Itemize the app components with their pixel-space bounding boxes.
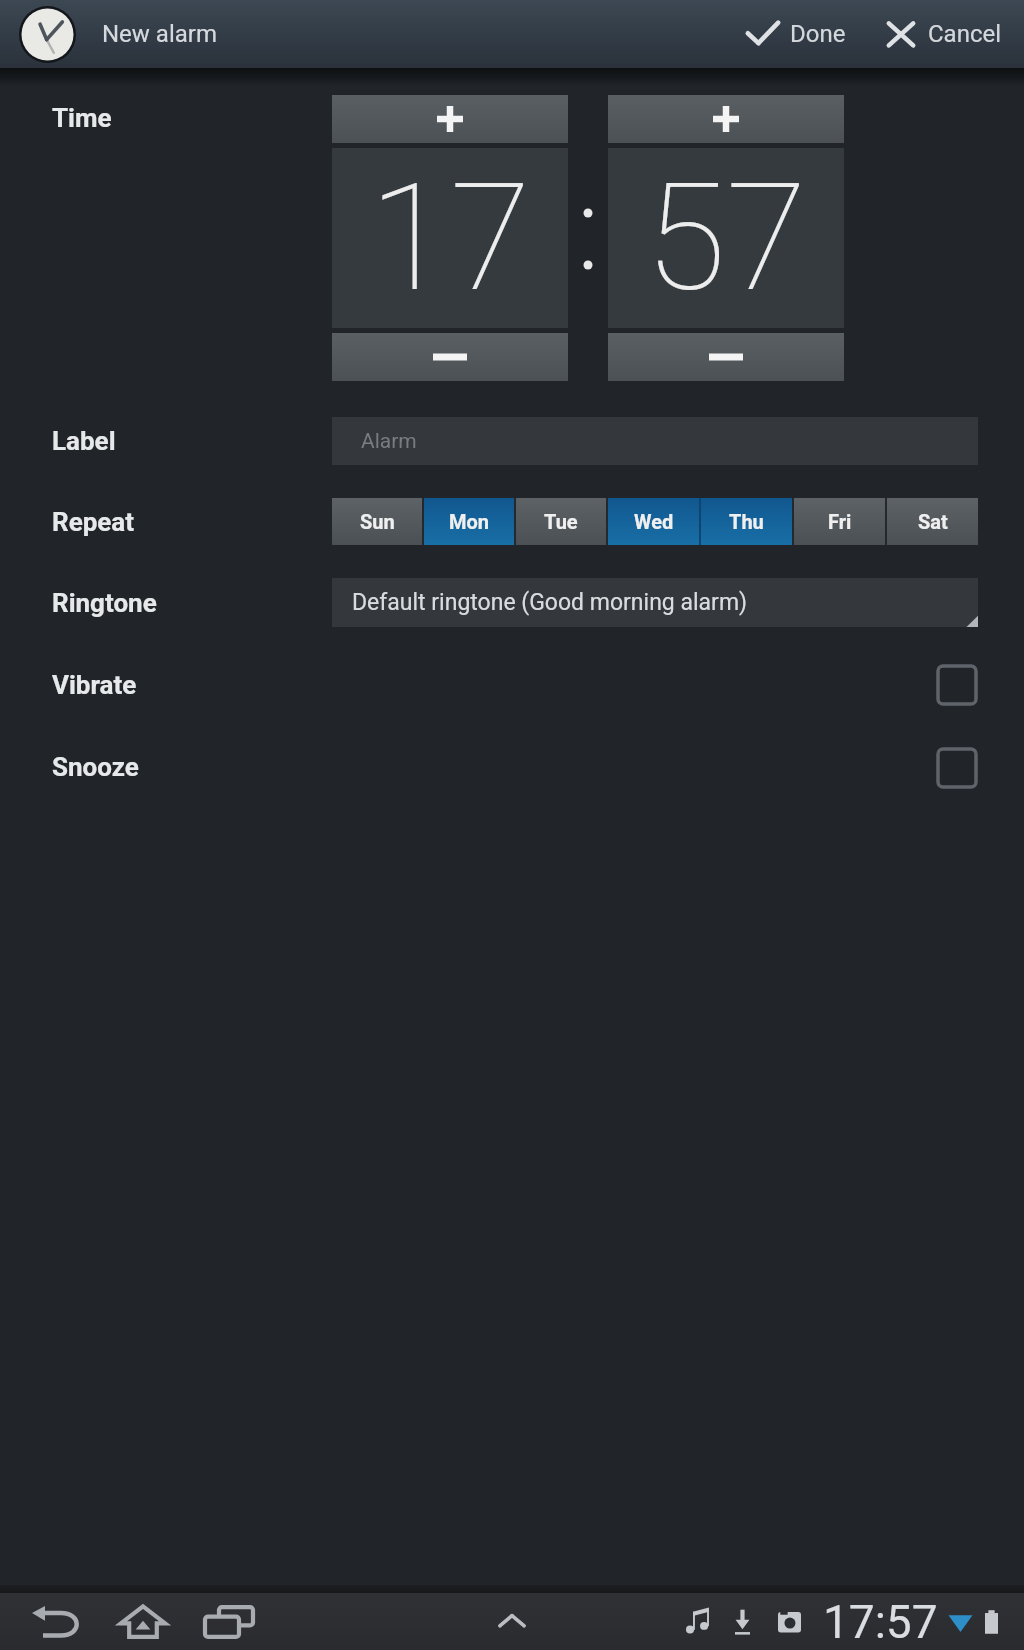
button[interactable]: Decrement [608,333,844,381]
staticText: Snooze [52,752,139,782]
button[interactable]: Show navigation [482,1593,542,1650]
button[interactable]: Alarm clock [16,3,78,65]
button[interactable]: Thu [701,498,792,545]
button[interactable]: Fri [794,498,885,545]
staticText: 57 [645,152,808,325]
staticText: Sun [360,510,395,533]
staticText: Wed [634,510,674,533]
staticText: Cancel [928,20,1002,48]
staticText: Sat [918,510,948,533]
staticText: Ringtone [52,588,157,618]
button[interactable]: Tue [516,498,606,545]
button[interactable]: Done [734,0,856,68]
button[interactable]: Default ringtone (Good morning alarm) [332,578,978,627]
button[interactable]: Sat [887,498,978,545]
button[interactable]: Recents [188,1593,270,1650]
staticText: Default ringtone (Good morning alarm) [352,589,748,616]
staticText: Vibrate [52,670,137,700]
button[interactable]: Increment [608,95,844,143]
staticText: Label [52,426,116,456]
button[interactable]: Cancel [872,0,1012,68]
staticText: Tue [544,510,578,533]
button[interactable]: Sun [332,498,422,545]
staticText: New alarm [102,20,217,48]
button[interactable]: Home [102,1593,184,1650]
button[interactable]: Back [16,1593,98,1650]
staticText: Thu [729,510,764,533]
staticText: Fri [828,510,852,533]
button[interactable]: Alarm [332,417,978,465]
staticText: Alarm [361,429,417,454]
staticText: Mon [449,510,490,533]
staticText: 17 [369,152,532,325]
staticText: Done [790,20,846,48]
staticText: Time [52,103,112,133]
button[interactable]: Wed [608,498,699,545]
button[interactable]: Decrement [332,333,568,381]
button[interactable]: Mon [424,498,514,545]
staticText: Repeat [52,507,135,537]
button[interactable]: Increment [332,95,568,143]
button[interactable]: Toggle [934,662,980,708]
button[interactable]: Toggle [934,745,980,791]
staticText: 17:57 [823,1595,938,1649]
